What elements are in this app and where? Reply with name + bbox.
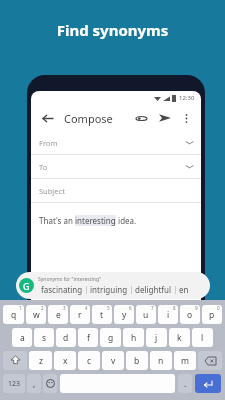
button[interactable]: b bbox=[126, 351, 148, 370]
button[interactable]: G bbox=[16, 272, 210, 299]
button[interactable]: k bbox=[169, 328, 190, 347]
button[interactable]: Back bbox=[38, 109, 56, 127]
button[interactable]: . bbox=[178, 374, 192, 393]
button[interactable]: f bbox=[78, 328, 98, 347]
staticText: k bbox=[177, 332, 182, 344]
staticText: 0 bbox=[217, 305, 220, 311]
button[interactable]: Enter bbox=[195, 374, 221, 393]
staticText: 6 bbox=[129, 305, 132, 311]
staticText: p bbox=[209, 309, 215, 321]
button[interactable]: More options bbox=[178, 110, 194, 126]
button[interactable]: e bbox=[48, 305, 68, 324]
button[interactable]: Subject bbox=[31, 179, 201, 202]
staticText: w bbox=[33, 309, 40, 321]
staticText: b bbox=[134, 355, 140, 367]
button[interactable]: s bbox=[34, 328, 54, 347]
staticText: m bbox=[181, 355, 189, 367]
button[interactable]: From bbox=[31, 131, 201, 154]
staticText: 8 bbox=[173, 305, 176, 311]
staticText: 12:30 bbox=[179, 94, 195, 102]
button[interactable]: t bbox=[92, 305, 112, 324]
button[interactable]: c bbox=[78, 351, 100, 370]
staticText: 9 bbox=[195, 305, 198, 311]
button[interactable]: Key bbox=[3, 374, 25, 393]
button[interactable]: q bbox=[3, 305, 24, 324]
button[interactable]: g bbox=[100, 328, 121, 347]
button[interactable]: l bbox=[192, 328, 213, 347]
button[interactable]: h bbox=[123, 328, 144, 347]
staticText: Find synonyms bbox=[0, 20, 225, 40]
staticText: c bbox=[87, 355, 92, 367]
staticText: s bbox=[42, 332, 47, 344]
staticText: interesting bbox=[75, 215, 116, 226]
button[interactable]: en bbox=[176, 284, 192, 295]
button[interactable]: intriguing bbox=[87, 284, 131, 295]
staticText: q bbox=[11, 309, 17, 321]
button[interactable]: n bbox=[150, 351, 172, 370]
staticText: To bbox=[39, 162, 48, 172]
button[interactable]: delightful bbox=[132, 284, 175, 295]
button[interactable]: Key bbox=[198, 351, 222, 370]
staticText: 123 bbox=[8, 379, 21, 389]
staticText: z bbox=[39, 355, 43, 367]
button[interactable]: o bbox=[180, 305, 200, 324]
staticText: Compose bbox=[64, 111, 113, 126]
button[interactable]: v bbox=[102, 351, 124, 370]
button[interactable]: Attach file bbox=[132, 109, 150, 127]
button[interactable]: Key bbox=[43, 374, 57, 393]
button[interactable]: , bbox=[27, 374, 41, 393]
staticText: 3 bbox=[63, 305, 66, 311]
staticText: , bbox=[33, 378, 36, 390]
button[interactable]: x bbox=[54, 351, 76, 370]
button[interactable]: u bbox=[136, 305, 156, 324]
staticText: 4 bbox=[85, 305, 88, 311]
button[interactable]: i bbox=[158, 305, 178, 324]
button[interactable]: w bbox=[26, 305, 46, 324]
button[interactable]: y bbox=[114, 305, 134, 324]
staticText: t bbox=[100, 309, 104, 321]
staticText: l bbox=[201, 332, 204, 344]
staticText: Synonyms for "interesting" bbox=[38, 276, 102, 283]
staticText: g bbox=[108, 332, 114, 344]
staticText: 2 bbox=[41, 305, 44, 311]
button[interactable]: Send bbox=[156, 109, 174, 127]
staticText: G bbox=[23, 280, 30, 292]
staticText: i bbox=[167, 309, 170, 321]
button[interactable]: Key bbox=[3, 351, 27, 370]
staticText: d bbox=[63, 332, 69, 344]
staticText: Subject bbox=[39, 186, 65, 196]
button[interactable]: m bbox=[174, 351, 196, 370]
button[interactable]: Space bbox=[60, 374, 175, 393]
staticText: f bbox=[87, 332, 90, 344]
staticText: u bbox=[143, 309, 149, 321]
staticText: n bbox=[158, 355, 164, 367]
button[interactable]: fascinating bbox=[38, 284, 86, 295]
staticText: That's an bbox=[39, 215, 75, 226]
staticText: r bbox=[78, 309, 82, 321]
staticText: x bbox=[63, 355, 68, 367]
button[interactable]: a bbox=[12, 328, 32, 347]
staticText: v bbox=[111, 355, 116, 367]
button[interactable]: d bbox=[56, 328, 76, 347]
staticText: y bbox=[122, 309, 127, 321]
staticText: a bbox=[20, 332, 25, 344]
staticText: 1 bbox=[19, 305, 22, 311]
button[interactable]: j bbox=[146, 328, 167, 347]
staticText: 7 bbox=[151, 305, 154, 311]
button[interactable]: p bbox=[202, 305, 222, 324]
staticText: . bbox=[184, 378, 187, 390]
button[interactable]: To bbox=[31, 155, 201, 178]
button[interactable]: z bbox=[29, 351, 52, 370]
staticText: h bbox=[131, 332, 137, 344]
staticText: 5 bbox=[107, 305, 110, 311]
staticText: idea. bbox=[116, 215, 137, 226]
button[interactable]: r bbox=[70, 305, 90, 324]
staticText: From bbox=[39, 138, 58, 148]
staticText: e bbox=[56, 309, 61, 321]
staticText: j bbox=[155, 332, 158, 344]
staticText: o bbox=[187, 309, 193, 321]
